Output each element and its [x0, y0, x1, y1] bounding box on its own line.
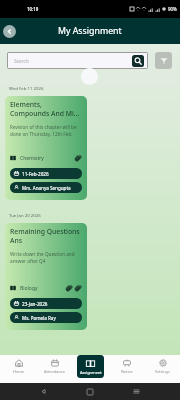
- button[interactable]: Settings: [149, 355, 176, 378]
- staticText: Mrs. Ananya Sengupta: [22, 185, 71, 191]
- button[interactable]: Back: [3, 25, 16, 38]
- button[interactable]: Filter: [155, 52, 172, 69]
- staticText: Chemistry: [20, 155, 44, 162]
- button[interactable]: Elements, Compounds And Mi...: [5, 96, 87, 200]
- button[interactable]: Attendance: [41, 355, 68, 378]
- staticText: Ms. Pamela Ray: [22, 315, 56, 321]
- button[interactable]: 23-Jan-2026: [10, 298, 82, 309]
- button[interactable]: Home: [5, 355, 32, 378]
- staticText: Assignment: [80, 370, 102, 375]
- staticText: Remaining Questions Ans: [10, 227, 80, 245]
- button[interactable]: Mrs. Ananya Sengupta: [10, 182, 82, 193]
- button[interactable]: 11-Feb-2026: [10, 168, 82, 179]
- staticText: Revision of this chapter will be done on…: [10, 124, 77, 138]
- staticText: 11-Feb-2026: [22, 171, 49, 177]
- button[interactable]: Assignment: [77, 355, 104, 378]
- staticText: Biology: [20, 285, 38, 292]
- staticText: 90%: [168, 6, 177, 12]
- staticText: Wed Feb 11 2026: [9, 85, 44, 91]
- staticText: 23-Jan-2026: [22, 301, 48, 307]
- staticText: Notice: [121, 369, 133, 374]
- staticText: Elements, Compounds And Mi...: [10, 100, 80, 118]
- staticText: Tue Jan 20 2026: [9, 212, 41, 218]
- button[interactable]: Remaining Questions Ans: [5, 223, 87, 330]
- staticText: Search: [14, 58, 132, 64]
- staticText: Write down the Question and answer after…: [10, 251, 75, 265]
- staticText: Attendance: [44, 369, 65, 374]
- button[interactable]: Search: [132, 55, 144, 67]
- staticText: My Assignment: [58, 25, 122, 37]
- button[interactable]: Search: [8, 53, 147, 68]
- staticText: Home: [13, 369, 25, 374]
- staticText: Settings: [155, 369, 170, 374]
- button[interactable]: Notice: [113, 355, 140, 378]
- staticText: 10:19: [27, 6, 39, 12]
- button[interactable]: Ms. Pamela Ray: [10, 312, 82, 323]
